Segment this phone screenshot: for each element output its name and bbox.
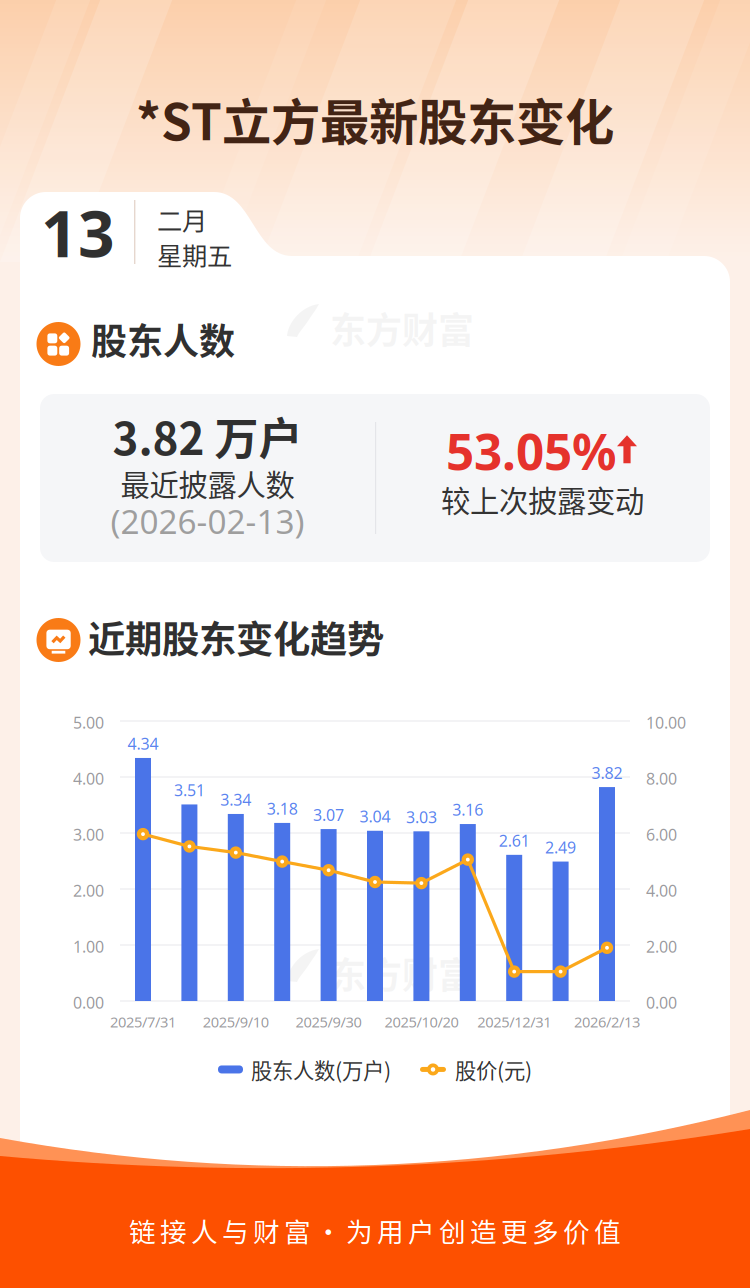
- staticText: (2026-02-13): [110, 499, 304, 543]
- staticText: 东方财富: [330, 947, 474, 999]
- staticText: 1.00: [73, 936, 104, 957]
- staticText: 10.00: [646, 712, 686, 733]
- staticText: 0.00: [646, 992, 677, 1013]
- staticText: 最近披露人数: [120, 462, 294, 504]
- staticText: 2025/7/31: [110, 1012, 176, 1031]
- staticText: 3.07: [313, 804, 344, 825]
- staticText: 4.00: [646, 880, 677, 901]
- staticText: *ST立方最新股东变化: [136, 83, 614, 154]
- staticText: 8.00: [646, 768, 677, 789]
- staticText: 二月: [157, 201, 207, 238]
- staticText: 0.00: [73, 992, 104, 1013]
- staticText: 2.49: [545, 837, 576, 858]
- staticText: 2.61: [499, 830, 530, 851]
- staticText: 3.82: [591, 762, 622, 783]
- staticText: 股价(元): [455, 1054, 532, 1085]
- staticText: 星期五: [157, 236, 232, 273]
- staticText: 较上次披露变动: [441, 478, 644, 520]
- staticText: 2.00: [646, 936, 677, 957]
- staticText: 3.34: [220, 789, 251, 810]
- staticText: 13: [41, 190, 115, 275]
- staticText: 53.05%: [446, 418, 616, 483]
- staticText: 3.04: [359, 806, 390, 827]
- staticText: 股东人数: [91, 313, 235, 365]
- staticText: 2025/9/10: [203, 1012, 269, 1031]
- staticText: 2025/10/20: [384, 1012, 458, 1031]
- staticText: 股东人数(万户): [251, 1054, 391, 1085]
- staticText: 3.51: [174, 779, 205, 801]
- staticText: 2026/2/13: [574, 1012, 640, 1031]
- staticText: 3.03: [406, 806, 437, 827]
- staticText: 4.00: [73, 768, 104, 789]
- staticText: 3.82 万户: [112, 404, 302, 468]
- staticText: 近期股东变化趋势: [88, 610, 384, 664]
- staticText: 2.00: [73, 880, 104, 901]
- staticText: 2025/9/30: [296, 1012, 362, 1031]
- staticText: 东方财富: [330, 302, 474, 354]
- staticText: 3.00: [73, 824, 104, 845]
- staticText: 2025/12/31: [477, 1012, 551, 1031]
- staticText: 3.18: [267, 798, 298, 819]
- staticText: 4.34: [127, 733, 158, 754]
- staticText: 链接人与财富·为用户创造更多价值: [129, 1211, 621, 1250]
- staticText: 3.16: [452, 799, 483, 820]
- staticText: 6.00: [646, 824, 677, 845]
- staticText: 5.00: [73, 712, 104, 733]
